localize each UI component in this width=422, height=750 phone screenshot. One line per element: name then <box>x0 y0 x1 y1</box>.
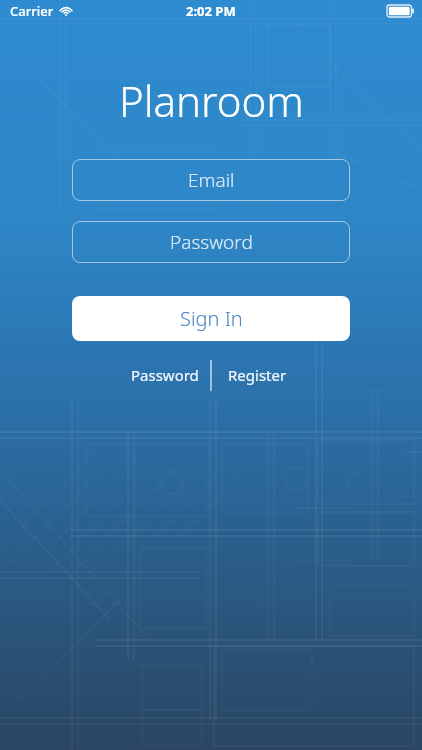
staticText: Password <box>131 365 199 385</box>
button[interactable]: Email <box>72 159 350 201</box>
button[interactable]: Register <box>212 358 302 392</box>
staticText: Planroom <box>119 72 304 129</box>
staticText: Email <box>188 167 235 193</box>
button[interactable]: Password <box>120 358 210 392</box>
staticText: Carrier <box>10 2 54 20</box>
staticText: Password <box>170 229 253 255</box>
staticText: 2:02 PM <box>186 2 236 20</box>
staticText: Sign In <box>180 305 243 332</box>
button[interactable]: Password <box>72 221 350 263</box>
staticText: Register <box>228 365 287 385</box>
button[interactable]: Sign In <box>72 296 350 341</box>
